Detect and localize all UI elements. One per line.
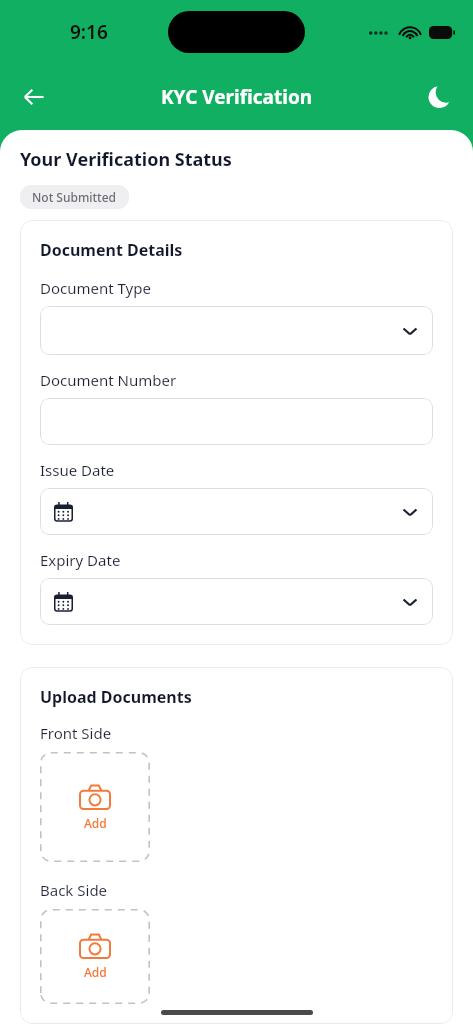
- staticText: 9:16: [70, 19, 108, 45]
- button[interactable]: [40, 306, 433, 355]
- button[interactable]: Back: [10, 73, 58, 121]
- staticText: Document Type: [40, 278, 151, 298]
- staticText: KYC Verification: [161, 84, 313, 110]
- staticText: Document Number: [40, 370, 177, 390]
- staticText: Not Submitted: [32, 189, 117, 205]
- staticText: Add: [84, 964, 107, 980]
- staticText: Issue Date: [40, 460, 115, 480]
- button[interactable]: Toggle dark mode: [415, 73, 463, 121]
- staticText: Upload Documents: [40, 686, 192, 708]
- button[interactable]: Add photo: [40, 752, 150, 862]
- staticText: Back Side: [40, 880, 108, 900]
- staticText: Document Details: [40, 239, 183, 261]
- staticText: Front Side: [40, 723, 112, 743]
- button[interactable]: Not Submitted: [20, 185, 129, 209]
- staticText: Your Verification Status: [20, 147, 232, 172]
- staticText: Add: [84, 815, 107, 831]
- button[interactable]: [40, 398, 433, 445]
- staticText: Expiry Date: [40, 550, 121, 570]
- button[interactable]: [40, 488, 433, 535]
- button[interactable]: Add photo: [40, 909, 150, 1004]
- button[interactable]: [40, 578, 433, 625]
